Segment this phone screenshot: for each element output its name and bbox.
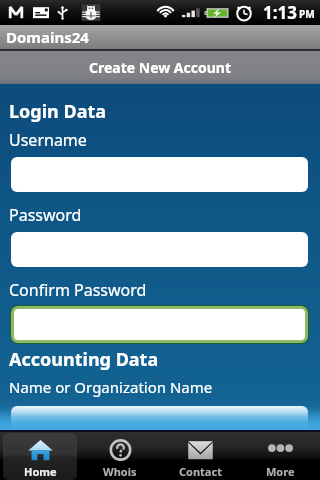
staticText: Whois [103, 464, 137, 479]
button[interactable] [10, 305, 309, 344]
staticText: Contact [179, 464, 222, 479]
staticText: Create New Account [89, 58, 232, 77]
button[interactable]: Whois [83, 433, 157, 480]
staticText: Confirm Password [9, 279, 147, 301]
staticText: PM [299, 7, 315, 21]
staticText: Password [9, 204, 82, 226]
button[interactable] [11, 406, 308, 441]
staticText: Name or Organization Name [9, 377, 213, 397]
staticText: Login Data [9, 99, 107, 124]
staticText: Username [9, 129, 87, 151]
button[interactable]: More [243, 433, 317, 480]
staticText: More [266, 464, 295, 479]
staticText: 1:13 [263, 1, 297, 24]
staticText: Home [24, 464, 57, 479]
staticText: Domains24 [6, 27, 89, 47]
button[interactable] [11, 157, 308, 192]
button[interactable]: Home [3, 433, 77, 480]
staticText: Accounting Data [9, 347, 159, 372]
button[interactable] [11, 232, 308, 267]
button[interactable]: Contact [163, 433, 237, 480]
